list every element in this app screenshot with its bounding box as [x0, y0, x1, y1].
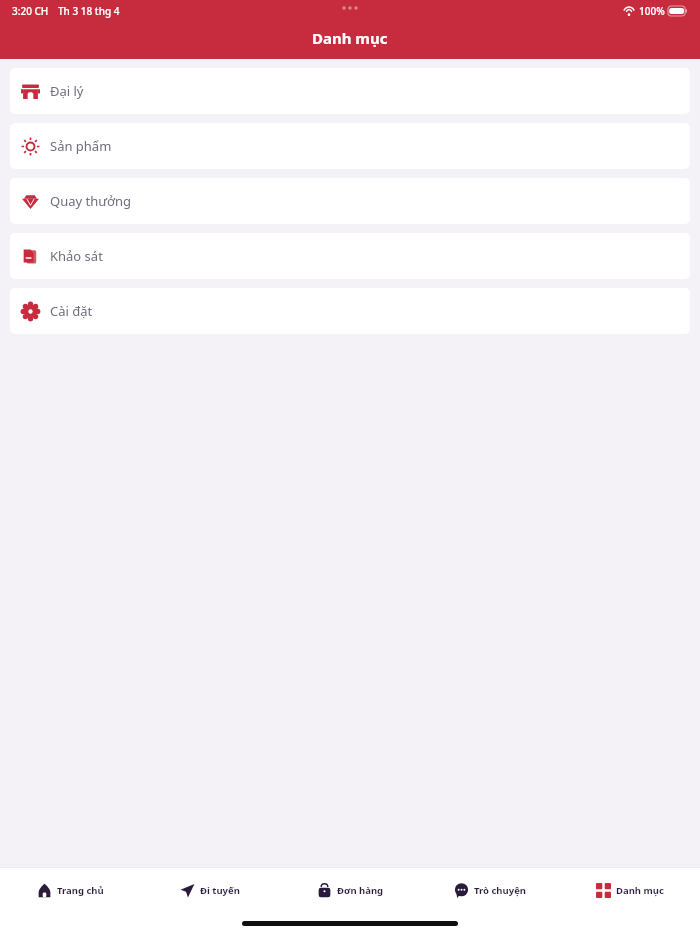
staticText: 3:20 CH — [12, 4, 49, 18]
staticText: Khảo sát — [50, 247, 103, 265]
staticText: Trò chuyện — [474, 884, 526, 897]
button[interactable]: Quay thưởng — [10, 178, 690, 224]
staticText: Đơn hàng — [337, 884, 384, 897]
button[interactable]: Khảo sát — [10, 233, 690, 279]
staticText: Đi tuyến — [200, 884, 240, 897]
staticText: Trang chủ — [57, 884, 104, 897]
button[interactable]: Trò chuyện — [420, 868, 560, 912]
staticText: Danh mục — [312, 28, 388, 48]
staticText: Đại lý — [50, 82, 84, 100]
button[interactable]: Đơn hàng — [280, 868, 420, 912]
staticText: Danh mục — [616, 884, 664, 897]
staticText: Sản phẩm — [50, 137, 112, 155]
button[interactable]: Sản phẩm — [10, 123, 690, 169]
button[interactable]: Danh mục — [560, 868, 700, 912]
staticText: Cài đặt — [50, 302, 93, 320]
staticText: Quay thưởng — [50, 192, 132, 210]
button[interactable]: Trang chủ — [0, 868, 140, 912]
staticText: 100% — [639, 4, 665, 18]
staticText: Th 3 18 thg 4 — [58, 4, 120, 18]
button[interactable]: Cài đặt — [10, 288, 690, 334]
button[interactable]: Đi tuyến — [140, 868, 280, 912]
button[interactable]: Đại lý — [10, 68, 690, 114]
